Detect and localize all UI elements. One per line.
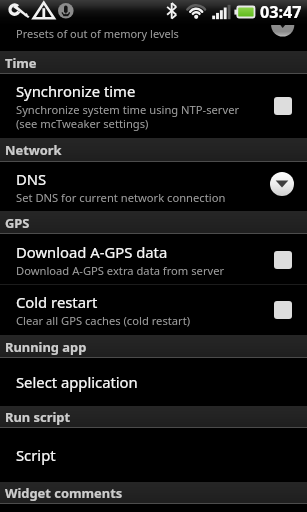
button[interactable]: Download A-GPS data [0,234,307,285]
staticText: Download A-GPS extra data from server [16,263,225,278]
staticText: Cold restart [16,292,98,312]
staticText: DNS [16,169,47,189]
staticText: Synchronize time [16,81,136,101]
staticText: Running app [5,338,87,356]
button[interactable]: Cold restart [0,285,307,335]
staticText: Clear all GPS caches (cold restart) [16,313,191,328]
button[interactable]: Presets of out of memory levels [0,25,307,51]
other: Open preset list [0,25,307,51]
button[interactable]: Select application [0,358,307,406]
staticText: Script [16,445,56,465]
button[interactable]: DNS [0,162,307,211]
staticText: Time [5,54,37,72]
button[interactable]: Script [0,428,307,482]
staticText: Widget comments [5,484,123,502]
staticText: Set DNS for current network connection [16,190,226,205]
staticText: 03:47 [260,1,302,23]
staticText: Select application [16,372,138,392]
staticText: GPS [5,214,30,232]
staticText: Presets of out of memory levels [16,26,179,41]
button[interactable]: Synchronize time [0,74,307,138]
staticText: Network [5,141,62,159]
staticText: Download A-GPS data [16,242,168,262]
other: Choose DNS server [270,172,294,196]
staticText: Run script [5,408,71,426]
staticText: Synchronize system time using NTP-server… [16,102,240,131]
